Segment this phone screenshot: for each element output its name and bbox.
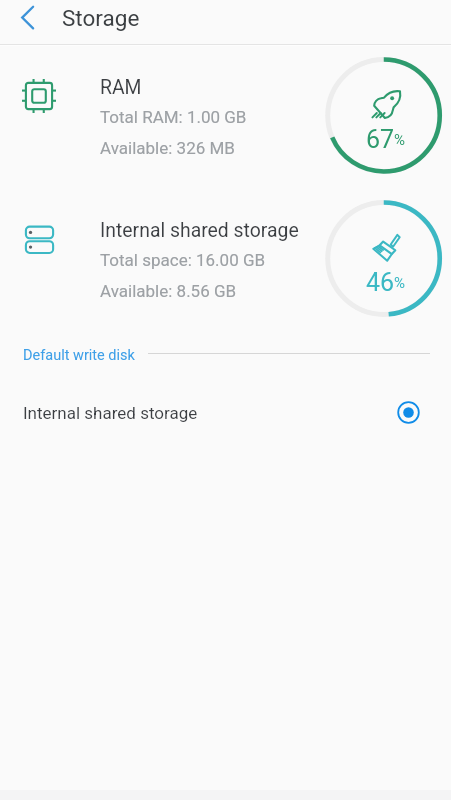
- button[interactable]: Internal shared storage: [0, 189, 451, 332]
- button[interactable]: Back: [5, 0, 49, 39]
- staticText: Default write disk: [23, 347, 135, 364]
- staticText: RAM: [100, 76, 142, 99]
- staticText: Internal shared storage: [23, 403, 198, 423]
- staticText: Total RAM: 1.00 GB: [100, 107, 247, 127]
- staticText: Available: 326 MB: [100, 138, 235, 158]
- staticText: Total space: 16.00 GB: [100, 250, 266, 270]
- staticText: Internal shared storage: [100, 219, 299, 242]
- staticText: 67: [366, 125, 395, 154]
- staticText: %: [394, 274, 405, 292]
- staticText: 46: [366, 268, 395, 297]
- button[interactable]: Internal shared storage: [0, 382, 451, 444]
- button[interactable]: RAM: [0, 46, 451, 189]
- staticText: Available: 8.56 GB: [100, 281, 237, 301]
- staticText: Storage: [62, 5, 140, 31]
- staticText: %: [394, 131, 405, 149]
